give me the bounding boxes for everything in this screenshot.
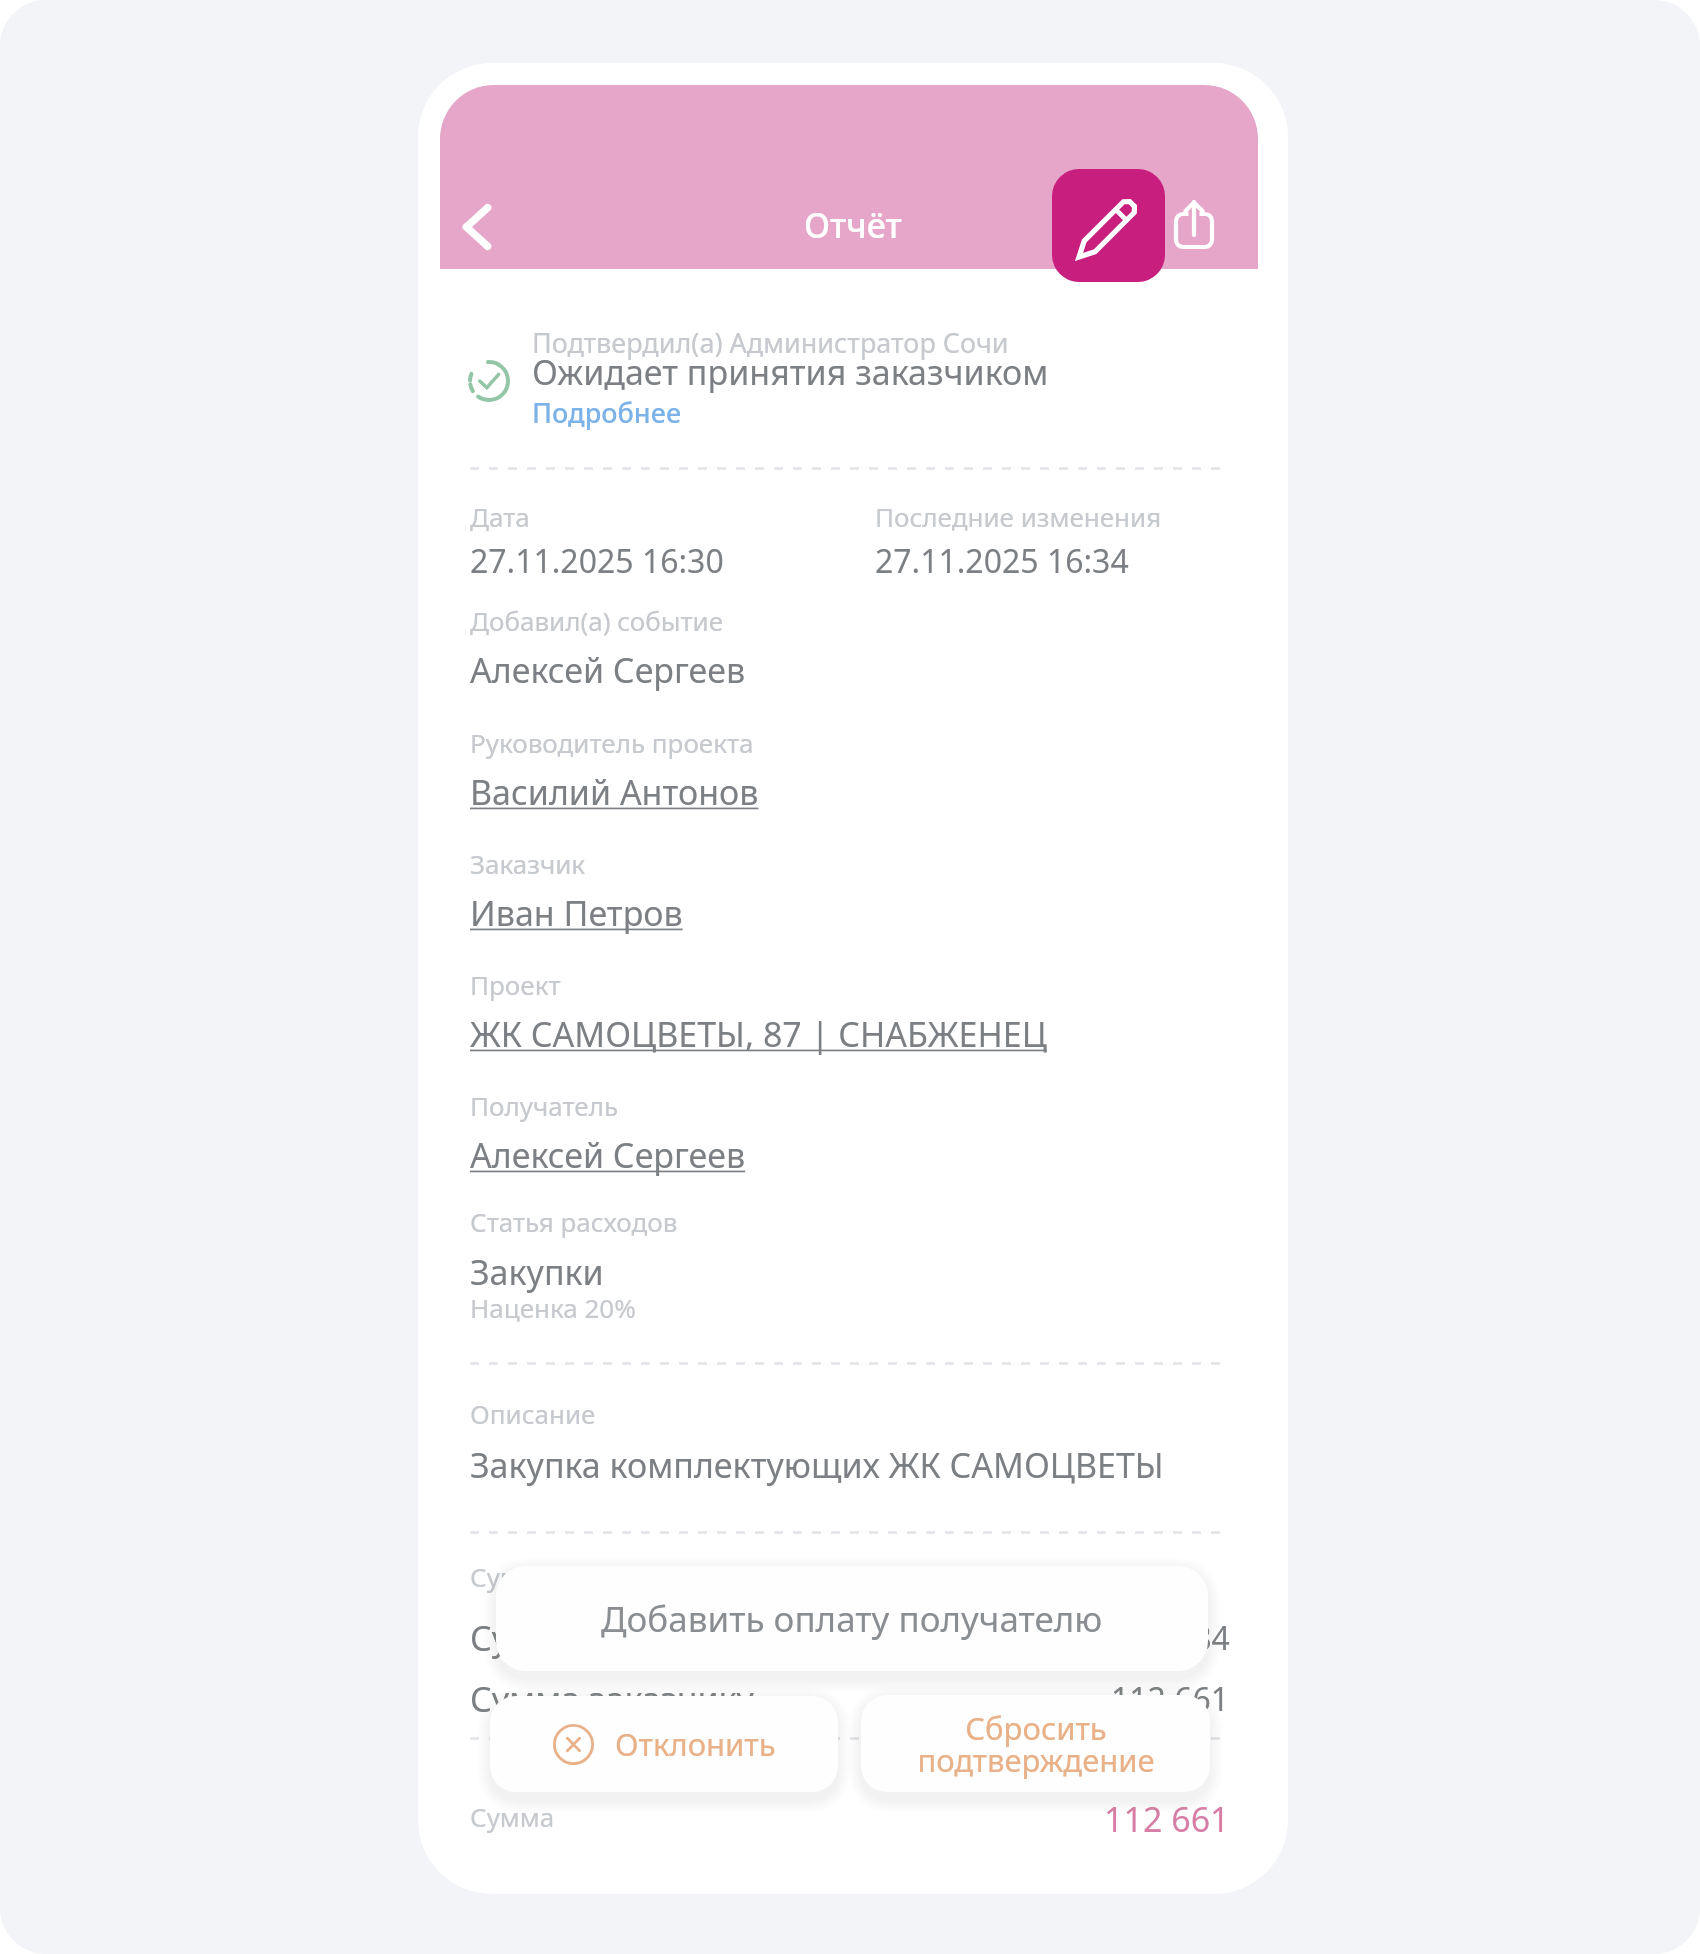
staticText: Последние изменения (875, 499, 1162, 534)
button[interactable]: Подробнее (440, 85, 590, 122)
button[interactable]: Отклонить (490, 1696, 838, 1792)
staticText: Иван Петров (470, 890, 683, 936)
staticText: Отчёт (804, 202, 902, 248)
staticText: Алексей Сергеев (470, 647, 746, 693)
button[interactable]: Сбросить подтверждение (861, 1695, 1210, 1792)
staticText: 27.11.2025 16:30 (470, 539, 724, 583)
staticText: Сумма заказчику (470, 1676, 754, 1722)
button[interactable]: Back (446, 196, 508, 258)
staticText: Добавил(а) событие (470, 603, 724, 638)
staticText: Наценка 20% (470, 1290, 636, 1325)
staticText: Руководитель проекта (470, 725, 754, 760)
staticText: 93 884 (1130, 1616, 1230, 1660)
staticText: Суммы по отчёту (470, 1559, 687, 1594)
staticText: ЖК САМОЦВЕТЫ, 87 | СНАБЖЕНЕЦ (470, 1011, 1047, 1057)
staticText: Отклонить (615, 1723, 776, 1765)
button[interactable]: Edit (1052, 169, 1165, 282)
staticText: Закупки (470, 1249, 604, 1295)
staticText: Получатель (470, 1088, 619, 1123)
staticText: Сбросить подтверждение (917, 1707, 1155, 1781)
staticText: Закупка комплектующих ЖК САМОЦВЕТЫ (470, 1442, 1164, 1488)
staticText: Описание (470, 1396, 596, 1431)
staticText: Проект (470, 967, 561, 1002)
staticText: Василий Антонов (470, 769, 759, 815)
staticText: Дата (470, 499, 530, 534)
staticText: Сумма получателю (470, 1615, 788, 1661)
staticText: Ожидает принятия заказчиком (532, 349, 1049, 395)
button[interactable]: Share (1164, 195, 1224, 255)
staticText: Сумма (470, 1799, 555, 1834)
staticText: Добавить оплату получателю (601, 1595, 1103, 1643)
staticText: Подтвердил(а) Администратор Сочи (532, 324, 1009, 361)
staticText: Заказчик (470, 846, 586, 881)
button[interactable]: Добавить оплату получателю (496, 1566, 1208, 1671)
staticText: 112 661 (1104, 1796, 1230, 1842)
staticText: Статья расходов (470, 1204, 678, 1239)
staticText: 112 661 (1111, 1677, 1230, 1721)
staticText: 27.11.2025 16:34 (875, 539, 1129, 583)
staticText: Алексей Сергеев (470, 1132, 746, 1178)
